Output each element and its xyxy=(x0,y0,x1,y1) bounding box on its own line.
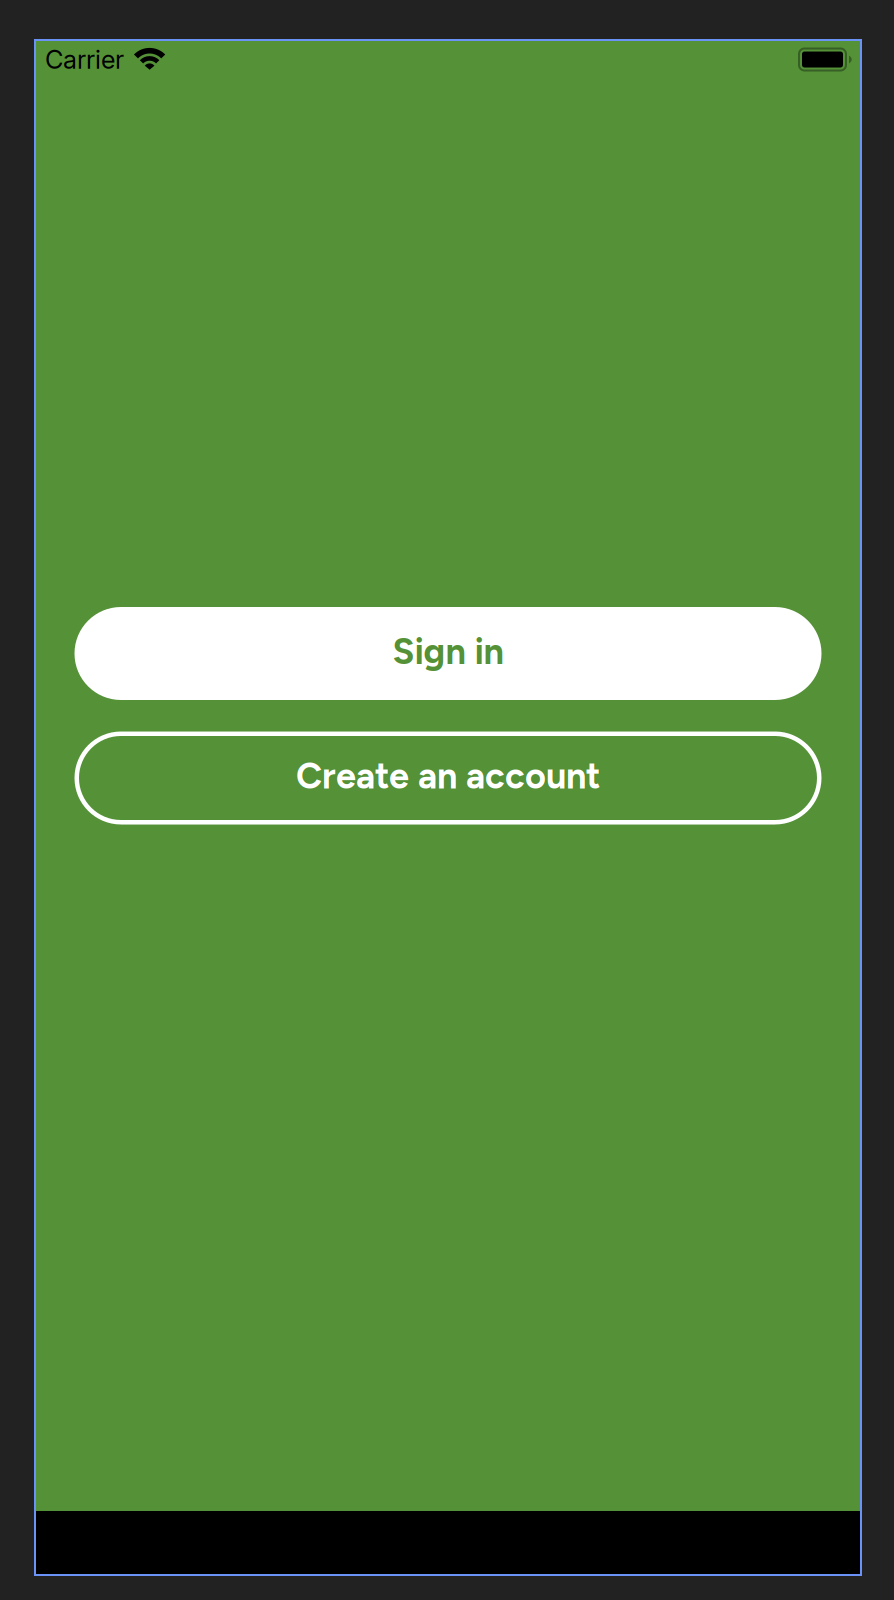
staticText: Sign in xyxy=(392,630,503,673)
staticText: Carrier xyxy=(45,44,124,75)
button[interactable]: Sign in xyxy=(74,607,821,700)
button[interactable]: Create an account xyxy=(74,731,821,824)
staticText: Create an account xyxy=(296,754,600,798)
